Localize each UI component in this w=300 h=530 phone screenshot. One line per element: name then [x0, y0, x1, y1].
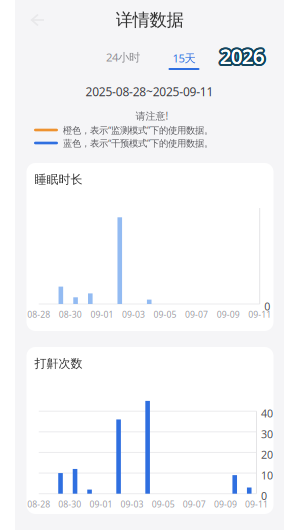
staticText: 2026	[220, 43, 264, 70]
staticText: 2026	[222, 42, 266, 69]
staticText: 15天	[172, 50, 195, 66]
staticText: 2026	[220, 45, 264, 72]
staticText: 20	[261, 447, 273, 462]
staticText: 40	[261, 406, 273, 421]
staticText: 2026	[221, 42, 265, 70]
staticText: 09-09	[217, 308, 240, 320]
staticText: 2026	[219, 44, 263, 72]
staticText: 2026	[219, 43, 263, 71]
staticText: 0	[261, 489, 267, 503]
staticText: 2026	[222, 41, 266, 68]
staticText: 08-28	[27, 498, 50, 510]
staticText: 2026	[220, 40, 264, 67]
staticText: 09-11	[245, 498, 268, 510]
staticText: 蓝色，表示“干预模式”下的使用数据。	[63, 137, 213, 149]
staticText: 打鼾次数	[34, 356, 82, 371]
staticText: 2026	[219, 41, 263, 68]
staticText: 2026	[222, 42, 266, 70]
staticText: 09-05	[153, 308, 176, 320]
staticText: 09-03	[121, 498, 144, 510]
staticText: 2026	[220, 42, 264, 69]
staticText: 2026	[222, 43, 266, 70]
staticText: 2026	[218, 42, 262, 70]
staticText: 2026	[220, 42, 264, 70]
staticText: 详情数据	[115, 9, 183, 31]
staticText: 24小时	[106, 49, 140, 65]
staticText: 2026	[220, 41, 264, 69]
staticText: 橙色，表示“监测模式”下的使用数据。	[63, 124, 213, 136]
staticText: 2026	[218, 41, 262, 68]
staticText: 2025-08-28~2025-09-11	[85, 83, 213, 100]
staticText: 2026	[221, 44, 265, 72]
staticText: 2026	[221, 41, 265, 68]
button[interactable]: 24小时	[97, 48, 149, 66]
staticText: 2026	[218, 43, 262, 70]
button[interactable]: 15天	[166, 49, 202, 73]
staticText: 09-05	[152, 498, 175, 510]
staticText: 2026	[221, 43, 265, 71]
staticText: 2026	[218, 44, 262, 71]
staticText: 09-03	[122, 308, 145, 320]
staticText: 睡眠时长	[34, 172, 82, 187]
staticText: 08-28	[27, 308, 50, 320]
staticText: 2026	[218, 42, 262, 70]
staticText: 2026	[220, 40, 264, 67]
staticText: 30	[261, 427, 273, 441]
staticText: 2026	[219, 42, 263, 70]
staticText: 2026	[220, 43, 264, 70]
staticText: 09-01	[90, 308, 113, 320]
staticText: 09-07	[183, 498, 206, 510]
staticText: 09-11	[248, 308, 271, 320]
staticText: 2026	[220, 41, 264, 68]
button[interactable]: 2026	[213, 44, 271, 68]
staticText: 2026	[220, 45, 264, 72]
staticText: 2026	[222, 44, 266, 71]
staticText: 请注意!	[135, 109, 168, 123]
staticText: 2026	[220, 44, 264, 71]
staticText: 2026	[222, 42, 266, 70]
staticText: 09-07	[185, 308, 208, 320]
staticText: 0	[264, 299, 270, 313]
staticText: 2026	[218, 42, 262, 69]
staticText: 08-30	[59, 308, 82, 320]
staticText: 2026	[220, 42, 264, 70]
staticText: 10	[261, 468, 273, 483]
staticText: 2026	[219, 40, 263, 67]
staticText: 2026	[220, 42, 264, 70]
staticText: 09-09	[214, 498, 237, 510]
staticText: 2026	[221, 40, 265, 67]
staticText: 09-01	[89, 498, 112, 510]
staticText: 08-30	[58, 498, 81, 510]
